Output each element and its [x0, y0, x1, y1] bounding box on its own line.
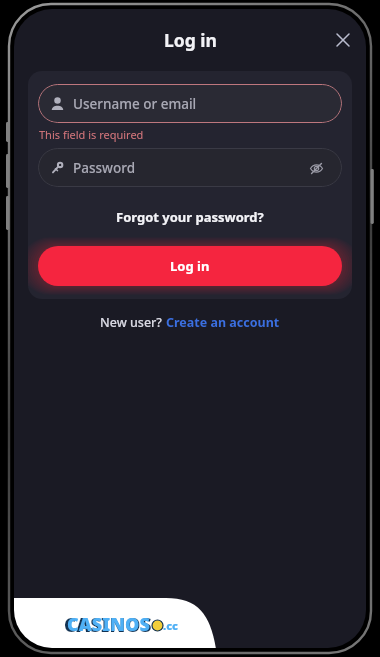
- button[interactable]: Forgot your password?: [38, 208, 342, 226]
- button[interactable]: Show password: [303, 155, 329, 181]
- button[interactable]: Create an account: [166, 314, 280, 331]
- staticText: Create an account: [166, 314, 280, 331]
- staticText: Log in: [164, 28, 217, 52]
- button[interactable]: Username or email: [38, 84, 342, 123]
- staticText: Username or email: [73, 95, 197, 113]
- button[interactable]: Casinos.cc: [64, 612, 179, 638]
- staticText: CASINOS: [64, 612, 152, 638]
- button[interactable]: Password: [38, 148, 342, 187]
- staticText: This field is required: [39, 127, 144, 142]
- button[interactable]: Close: [326, 23, 360, 57]
- staticText: New user?: [100, 314, 166, 331]
- staticText: CASINOS: [67, 612, 150, 637]
- staticText: Password: [73, 159, 136, 177]
- staticText: .cc: [163, 618, 179, 633]
- staticText: Log in: [170, 257, 210, 275]
- button[interactable]: Log in: [38, 246, 342, 286]
- staticText: Forgot your password?: [116, 208, 264, 226]
